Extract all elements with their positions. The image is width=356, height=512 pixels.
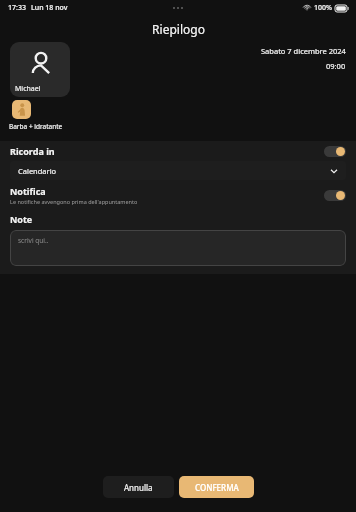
staticText: 09:00 [326, 61, 346, 71]
button[interactable]: Annulla [103, 476, 174, 498]
button[interactable]: Toggle [324, 146, 346, 157]
staticText: Notifica [10, 185, 46, 197]
staticText: Sabato 7 dicembre 2024 [261, 46, 346, 56]
staticText: Barba + idratante [9, 122, 63, 131]
staticText: Annulla [124, 482, 153, 493]
button[interactable]: Toggle [324, 190, 346, 201]
staticText: Lun 18 nov [31, 3, 68, 13]
button[interactable]: scrivi qui.. [10, 230, 346, 266]
button[interactable]: Barba + idratante [12, 100, 66, 131]
button[interactable]: Michael [10, 42, 70, 97]
staticText: Michael [15, 84, 41, 94]
staticText: Riepilogo [152, 21, 205, 37]
button[interactable]: Ricorda in [0, 141, 356, 161]
staticText: CONFERMA [195, 482, 239, 493]
staticText: Calendario [18, 166, 57, 176]
staticText: Ricorda in [10, 145, 55, 157]
button[interactable]: CONFERMA [179, 476, 254, 498]
staticText: scrivi qui.. [18, 236, 49, 245]
button[interactable]: Notifica [0, 185, 356, 213]
staticText: Note [10, 213, 33, 225]
button[interactable]: Calendario [10, 161, 346, 180]
staticText: Le notifiche avvengono prima dell'appunt… [10, 198, 138, 205]
staticText: 17:33 [8, 3, 26, 13]
staticText: 100% [314, 3, 332, 13]
